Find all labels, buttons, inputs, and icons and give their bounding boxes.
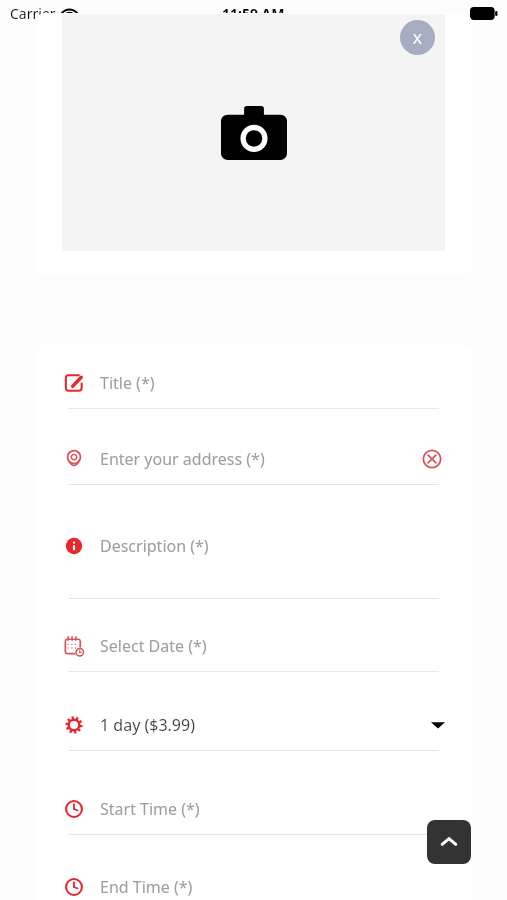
button[interactable] <box>62 14 445 251</box>
staticText: Enter your address (*) <box>100 448 265 470</box>
button[interactable]: End Time (*) <box>62 872 445 900</box>
button[interactable]: Start Time (*) <box>62 794 445 838</box>
button[interactable]: Select Date (*) <box>62 631 445 675</box>
staticText: X <box>413 28 422 48</box>
staticText: 1 day ($3.99) <box>100 714 195 736</box>
staticText: Title (*) <box>100 372 155 394</box>
staticText: 11:59 AM <box>222 4 285 23</box>
staticText: End Time (*) <box>100 876 193 898</box>
button[interactable]: Description (*) <box>62 531 445 575</box>
button[interactable]: Scroll to top <box>427 820 471 864</box>
button[interactable]: Close <box>400 20 435 55</box>
button[interactable]: Title (*) <box>62 368 445 412</box>
staticText: Carrier <box>10 4 56 23</box>
staticText: Description (*) <box>100 535 209 557</box>
staticText: Select Date (*) <box>100 635 207 657</box>
button[interactable]: Clear address <box>419 446 445 472</box>
staticText: Start Time (*) <box>100 798 200 820</box>
button[interactable]: 1 day ($3.99) <box>62 710 445 754</box>
button[interactable]: Enter your address (*) <box>62 444 445 488</box>
